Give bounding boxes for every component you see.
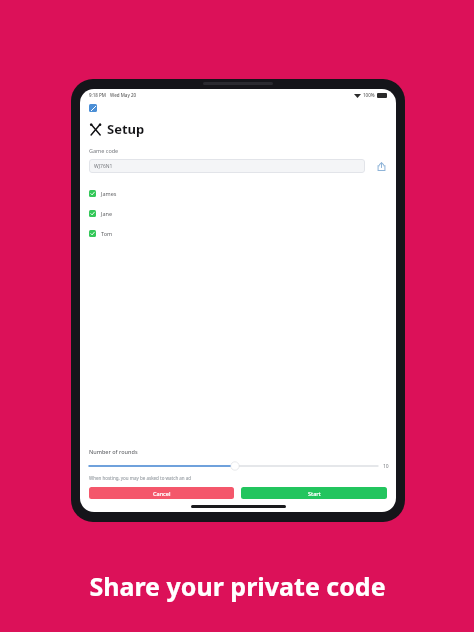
staticText: Tom (101, 230, 113, 237)
button[interactable]: Share (373, 158, 389, 174)
button[interactable]: Start (241, 487, 387, 499)
staticText: Number of rounds (89, 448, 138, 455)
button[interactable]: James (80, 183, 396, 203)
button[interactable]: Cancel (89, 487, 234, 499)
staticText: Game code (89, 147, 119, 154)
button[interactable]: WJ76N1 (89, 159, 365, 173)
staticText: Wed May 20 (110, 92, 137, 98)
button[interactable]: Tom (80, 223, 396, 243)
staticText: Cancel (153, 490, 171, 497)
staticText: Setup (107, 120, 145, 138)
staticText: Start (308, 490, 321, 497)
staticText: Jane (101, 210, 113, 217)
button[interactable]: Jane (80, 203, 396, 223)
staticText: 100% (363, 92, 375, 98)
button[interactable] (89, 461, 378, 471)
staticText: 9:18 PM (89, 92, 106, 98)
staticText: Share your private code (89, 569, 386, 603)
staticText: James (101, 190, 117, 197)
staticText: 10 (383, 463, 389, 470)
staticText: When hosting, you may be asked to watch … (89, 475, 192, 481)
staticText: WJ76N1 (94, 163, 113, 170)
